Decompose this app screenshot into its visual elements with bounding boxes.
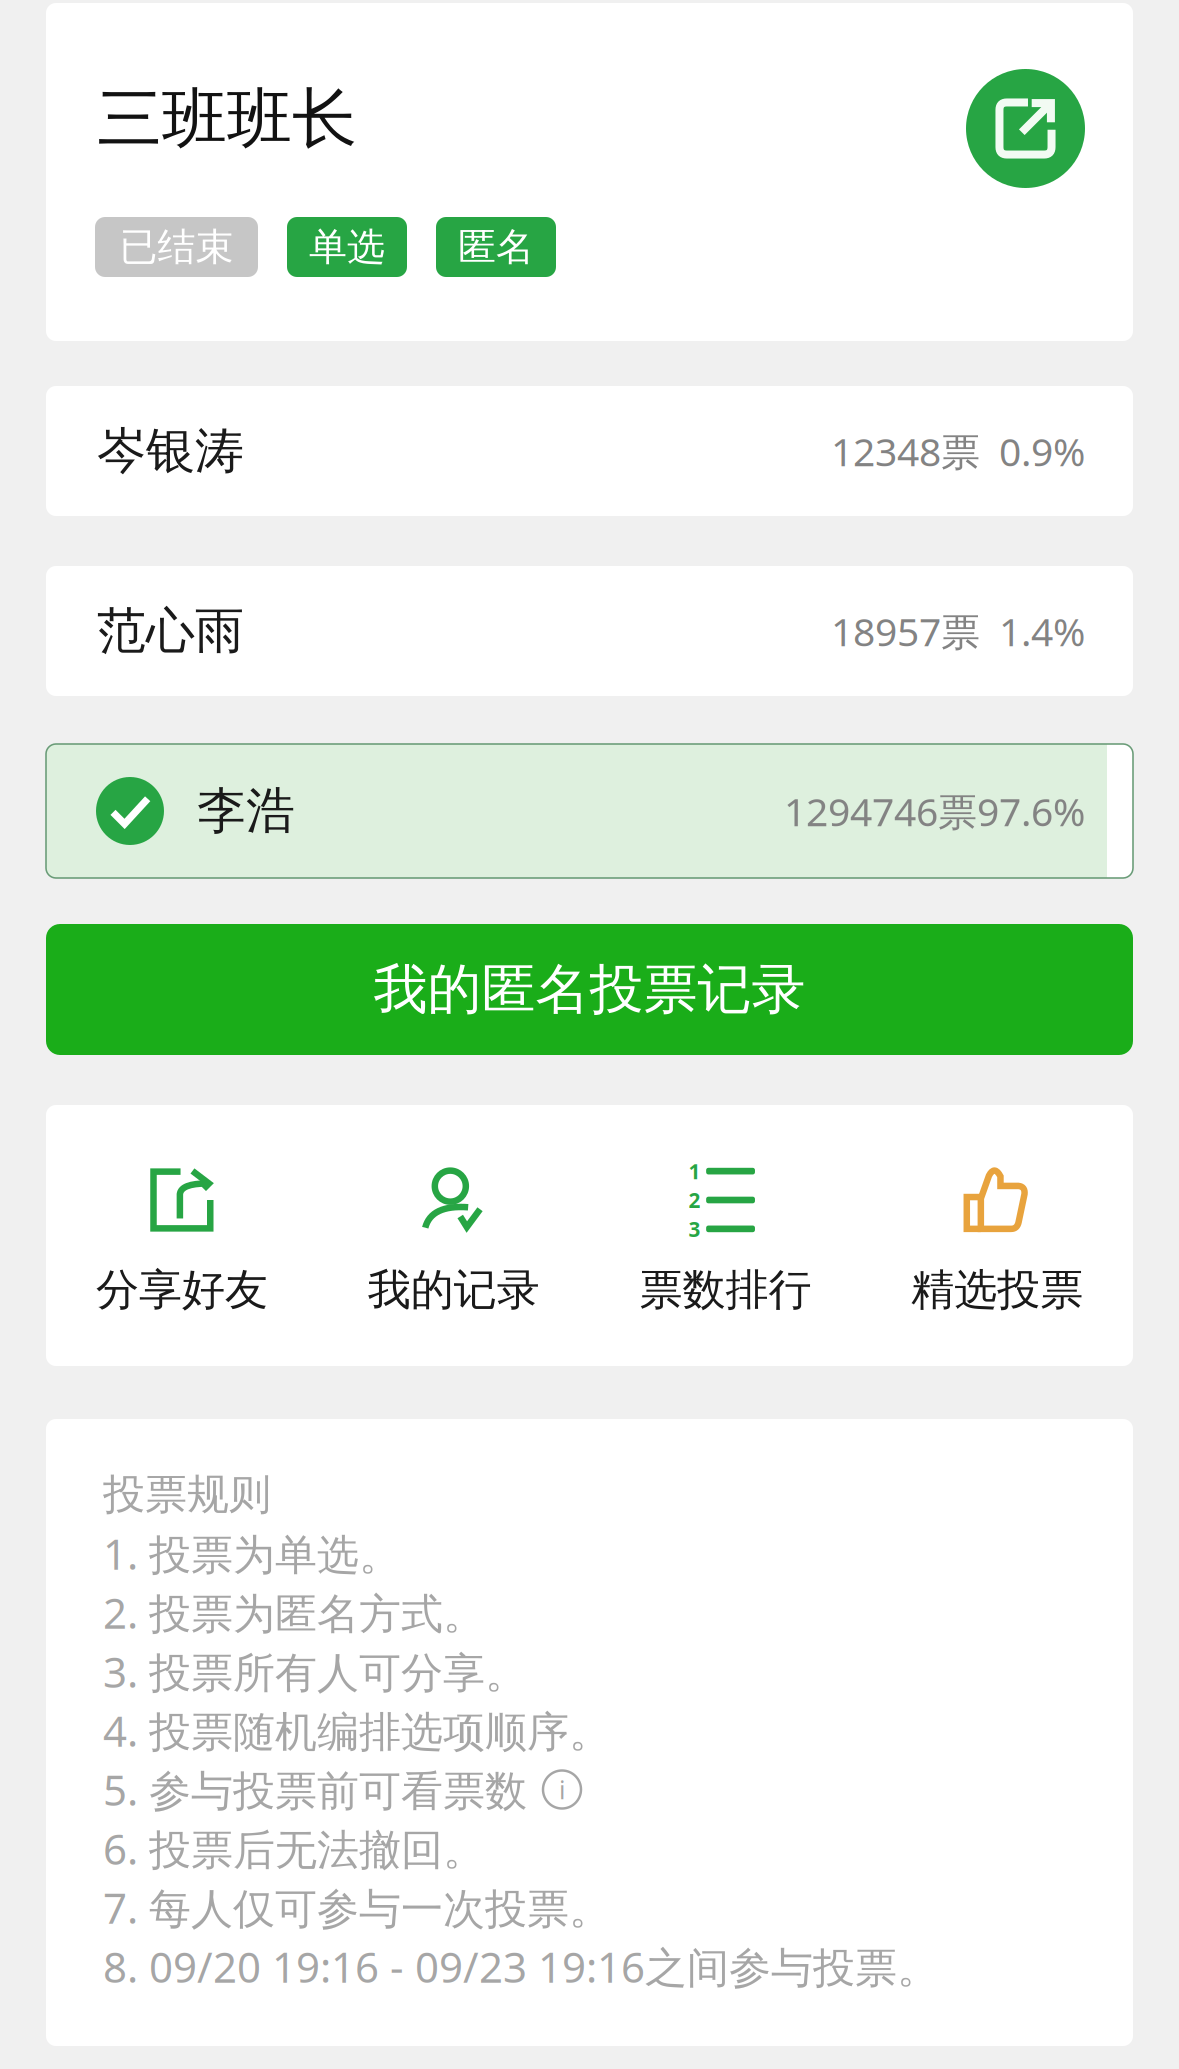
staticText: 匿名	[458, 223, 534, 271]
staticText: 我的匿名投票记录	[373, 955, 805, 1023]
staticText: 4. 投票随机编排选项顺序。	[103, 1702, 611, 1759]
staticText: 票数排行	[639, 1263, 811, 1317]
staticText: 3	[688, 1215, 700, 1243]
staticText: 7. 每人仅可参与一次投票。	[103, 1879, 611, 1936]
staticText: i	[559, 1772, 565, 1807]
button[interactable]: 李浩	[46, 744, 1133, 878]
staticText: 18957票	[831, 604, 980, 657]
staticText: 0.9%	[999, 424, 1085, 477]
staticText: 1. 投票为单选。	[103, 1525, 401, 1582]
staticText: 12348票	[831, 424, 980, 477]
button[interactable]: 分享好友	[46, 1169, 318, 1312]
button[interactable]: 范心雨	[46, 566, 1133, 696]
button[interactable]: 1	[589, 1169, 861, 1312]
staticText: 已结束	[119, 223, 233, 271]
staticText: 97.6%	[977, 784, 1085, 837]
staticText: 2. 投票为匿名方式。	[103, 1584, 485, 1641]
staticText: 1294746票	[784, 784, 977, 837]
staticText: 1	[688, 1157, 700, 1185]
staticText: 1.4%	[999, 604, 1085, 657]
button[interactable]: 我的记录	[318, 1169, 590, 1312]
staticText: 3. 投票所有人可分享。	[103, 1643, 527, 1700]
button[interactable]: 分享	[966, 69, 1085, 188]
staticText: 投票规则	[103, 1468, 271, 1521]
staticText: 三班班长	[97, 78, 357, 160]
staticText: 范心雨	[97, 600, 244, 662]
staticText: 李浩	[197, 780, 295, 842]
button[interactable]: 岑银涛	[46, 386, 1133, 516]
staticText: 精选投票	[911, 1263, 1083, 1317]
staticText: 分享好友	[96, 1263, 268, 1317]
staticText: 单选	[309, 223, 385, 271]
staticText: 5. 参与投票前可看票数	[103, 1761, 527, 1818]
staticText: 8. 09/20 19:16 - 09/23 19:16之间参与投票。	[103, 1938, 939, 1995]
staticText: 2	[688, 1186, 700, 1214]
button[interactable]: 精选投票	[861, 1169, 1133, 1312]
staticText: 岑银涛	[97, 420, 244, 482]
staticText: 我的记录	[368, 1263, 540, 1317]
button[interactable]: 我的匿名投票记录	[46, 924, 1133, 1055]
staticText: 6. 投票后无法撤回。	[103, 1820, 485, 1877]
